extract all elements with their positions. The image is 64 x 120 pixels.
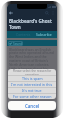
staticText: Blackbeard was an English pirate who ope… [9,47,55,83]
button[interactable]: Back [8,10,14,16]
staticText: Cancel [25,103,40,109]
button[interactable]: Search [44,10,50,16]
button[interactable]: Cancel [8,101,56,110]
staticText: Contents [16,32,31,37]
button[interactable]: Subscribe [36,32,52,37]
staticText: It's not true [22,88,42,93]
button[interactable]: It's not true [8,88,56,93]
staticText: Saved [13,42,22,46]
button[interactable]: This is spam [8,76,56,81]
staticText: Blackbeard's Ghost Town [9,18,57,30]
button[interactable]: I'm not interested in this [8,82,56,87]
staticText: For some other reason [13,94,52,99]
button[interactable]: Saved [8,41,23,46]
button[interactable]: For some other reason [8,94,56,99]
staticText: Subscribe [36,32,52,37]
staticText: I'm not interested in this [11,82,53,87]
staticText: Please select the reason for reporting [10,69,54,75]
staticText: This is spam [22,76,43,81]
